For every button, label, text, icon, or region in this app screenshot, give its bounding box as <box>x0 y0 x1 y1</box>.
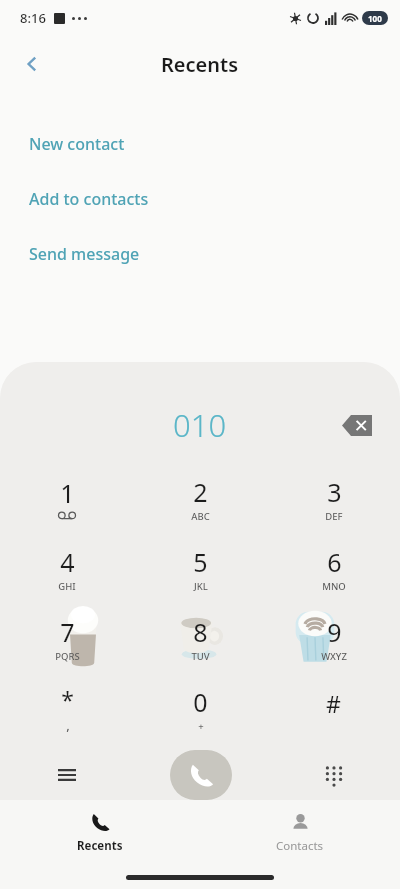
staticText: 6 <box>327 545 342 579</box>
staticText: New contact <box>29 133 125 155</box>
staticText: GHI <box>58 580 76 593</box>
staticText: 8:16 <box>20 9 46 27</box>
staticText: , <box>66 716 70 734</box>
button[interactable]: Call log <box>0 750 134 800</box>
staticText: # <box>326 688 341 719</box>
button[interactable]: Call <box>170 750 232 800</box>
staticText: ABC <box>191 510 210 523</box>
staticText: 5 <box>193 545 208 579</box>
button[interactable]: 6 <box>267 534 400 604</box>
staticText: Recents <box>77 838 123 854</box>
staticText: 1 <box>60 476 75 510</box>
staticText: Recents <box>161 51 239 78</box>
staticText: 2 <box>193 475 208 509</box>
button[interactable]: Back <box>10 42 54 86</box>
staticText: 7 <box>60 615 75 649</box>
button[interactable]: 2 <box>134 464 267 534</box>
staticText: 0 <box>193 685 208 719</box>
staticText: 3 <box>327 475 342 509</box>
button[interactable]: New contact <box>0 116 400 171</box>
staticText: WXYZ <box>321 650 347 663</box>
button[interactable]: 9 <box>267 604 400 674</box>
button[interactable]: * <box>0 674 134 744</box>
button[interactable]: 8 <box>134 604 267 674</box>
staticText: Add to contacts <box>29 188 149 210</box>
staticText: 4 <box>60 545 75 579</box>
staticText: + <box>198 720 204 733</box>
staticText: * <box>61 684 74 715</box>
button[interactable]: 4 <box>0 534 134 604</box>
button[interactable]: Recents <box>0 800 200 866</box>
button[interactable]: 3 <box>267 464 400 534</box>
staticText: 9 <box>327 615 342 649</box>
button[interactable]: 1 <box>0 464 134 534</box>
button[interactable]: Send message <box>0 226 400 281</box>
staticText: 010 <box>173 404 227 446</box>
staticText: JKL <box>194 580 208 593</box>
staticText: MNO <box>322 580 346 593</box>
staticText: DEF <box>325 510 343 523</box>
button[interactable]: Contacts <box>200 800 400 866</box>
button[interactable]: Add to contacts <box>0 171 400 226</box>
button[interactable]: Backspace <box>336 404 378 446</box>
button[interactable]: 0 <box>134 674 267 744</box>
staticText: TUV <box>191 650 210 663</box>
staticText: 8 <box>193 615 208 649</box>
staticText: 100 <box>368 13 382 24</box>
staticText: Send message <box>29 243 140 265</box>
button[interactable]: 7 <box>0 604 134 674</box>
staticText: PQRS <box>55 650 80 663</box>
button[interactable]: Keypad <box>267 750 400 800</box>
button[interactable]: # <box>267 674 400 744</box>
staticText: Contacts <box>276 838 324 854</box>
button[interactable]: 5 <box>134 534 267 604</box>
